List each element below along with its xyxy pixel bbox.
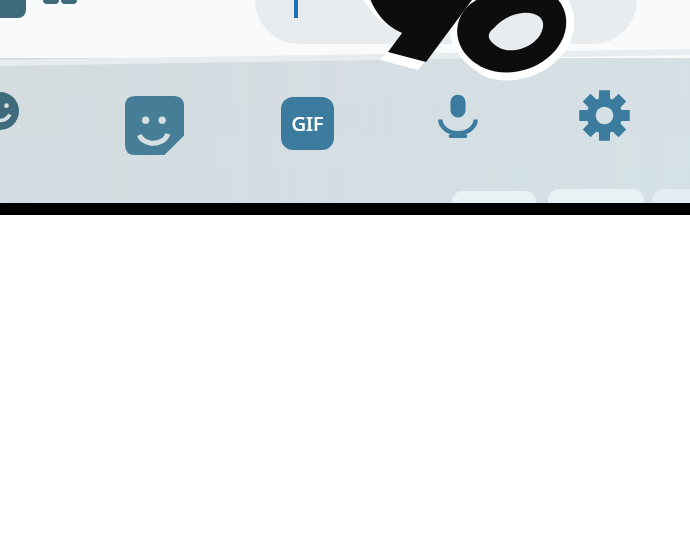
button[interactable]: Clipboard xyxy=(43,0,59,4)
button[interactable]: GIF xyxy=(281,97,334,150)
button[interactable]: Voice input xyxy=(432,91,484,143)
button[interactable]: Emoji xyxy=(0,92,19,130)
staticText: GIF xyxy=(291,110,324,137)
button[interactable]: Settings xyxy=(577,88,632,143)
button[interactable]: Stickers xyxy=(125,96,184,155)
button[interactable]: Clipboard item xyxy=(61,0,77,4)
button[interactable]: Emoji xyxy=(0,0,26,18)
